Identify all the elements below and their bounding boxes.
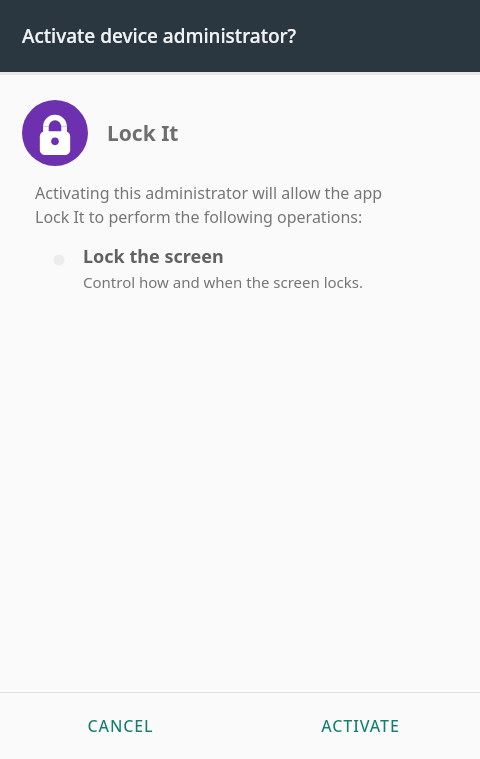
staticText: Control how and when the screen locks.: [83, 272, 363, 292]
other: Lock It app icon: [22, 100, 88, 166]
staticText: Activating this administrator will allow…: [35, 182, 383, 228]
staticText: Lock the screen: [83, 244, 224, 269]
staticText: CANCEL: [87, 715, 154, 737]
staticText: Lock It: [107, 119, 179, 148]
button[interactable]: ACTIVATE: [240, 693, 480, 759]
button[interactable]: CANCEL: [0, 693, 240, 759]
staticText: Activate device administrator?: [22, 23, 297, 49]
staticText: ACTIVATE: [321, 715, 400, 737]
